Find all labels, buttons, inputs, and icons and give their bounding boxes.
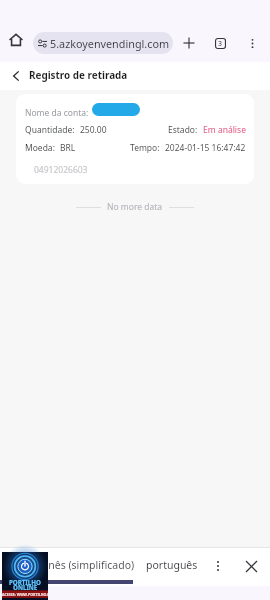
button[interactable]: Home	[5, 29, 27, 51]
staticText: Quantidade:	[25, 124, 75, 136]
staticText: BRL	[60, 142, 76, 154]
button[interactable]: chinês (simplificado)	[34, 550, 138, 579]
button[interactable]: Switch tabs	[209, 32, 231, 54]
button[interactable]: português	[146, 550, 202, 579]
staticText: Estado:	[168, 124, 198, 136]
staticText: português	[146, 558, 198, 572]
button[interactable]: More options	[241, 32, 263, 54]
staticText: ACESSE: WWW.PORTILHO.ONLINE	[2, 592, 48, 597]
staticText: Em análise	[203, 124, 246, 136]
staticText: 5.azkoyenvendingl.com	[50, 36, 170, 51]
button[interactable]: New tab	[178, 32, 200, 54]
staticText: PORTILHO	[9, 578, 41, 586]
staticText: chinês (simplificado)	[34, 558, 135, 572]
button[interactable]: Nome da conta:	[16, 94, 254, 184]
staticText: 250.00	[80, 124, 107, 136]
staticText: 2024-01-15 16:47:42	[165, 142, 246, 154]
button[interactable]: Back	[2, 62, 30, 90]
button[interactable]: More translate options	[206, 554, 229, 577]
staticText: Nome da conta:	[25, 107, 89, 119]
staticText: Tempo:	[130, 142, 160, 154]
staticText: No more data	[107, 201, 163, 213]
staticText: 3	[218, 39, 223, 49]
staticText: 04912026603	[34, 164, 88, 176]
staticText: Moeda:	[25, 142, 55, 154]
staticText: Registro de retirada	[29, 68, 128, 81]
button[interactable]: 5.azkoyenvendingl.com	[33, 32, 173, 54]
button[interactable]: Close translate bar	[240, 555, 263, 578]
staticText: ONLINE	[13, 583, 38, 591]
